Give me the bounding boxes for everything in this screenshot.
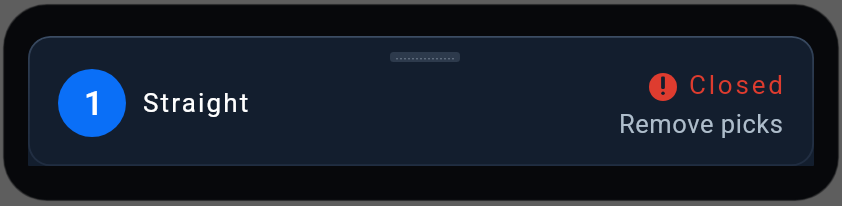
button[interactable]: Drag handle (390, 52, 460, 62)
staticText: Remove picks (619, 109, 784, 139)
button[interactable]: Drag handle (28, 36, 814, 166)
staticText: Closed (689, 70, 786, 100)
button[interactable]: 1 (58, 69, 251, 137)
button[interactable]: Closed (621, 70, 786, 139)
staticText: 1 (84, 83, 104, 123)
staticText: Straight (143, 88, 251, 118)
other: Closed (649, 73, 677, 101)
